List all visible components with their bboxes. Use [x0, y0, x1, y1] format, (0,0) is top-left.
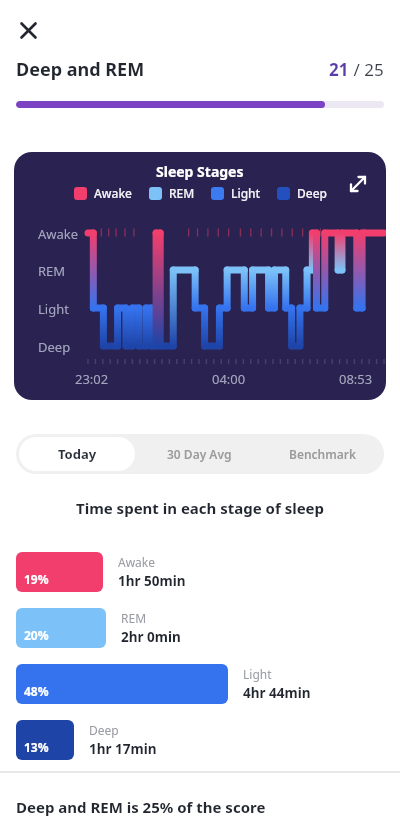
staticText: Deep and REM — [16, 57, 145, 82]
staticText: 1hr 17min — [89, 740, 157, 758]
staticText: 19% — [24, 571, 49, 587]
staticText: Awake — [118, 554, 156, 570]
staticText: REM — [121, 610, 147, 626]
staticText: Deep — [38, 338, 71, 356]
staticText: Awake — [38, 225, 79, 243]
staticText: 23:02 — [75, 370, 109, 388]
staticText: 13% — [24, 739, 49, 755]
staticText: Sleep Stages — [156, 162, 244, 181]
staticText: 4hr 44min — [243, 684, 311, 702]
staticText: 48% — [24, 683, 49, 699]
staticText: Benchmark — [289, 446, 357, 462]
staticText: Deep — [89, 722, 119, 738]
staticText: Deep — [297, 185, 327, 201]
staticText: Light — [231, 185, 261, 201]
staticText: Light — [38, 300, 69, 318]
staticText: Time spent in each stage of sleep — [76, 498, 325, 518]
staticText: / 25 — [349, 58, 384, 81]
staticText: 1hr 50min — [118, 572, 186, 590]
button[interactable]: Benchmark — [261, 434, 384, 474]
button[interactable]: 30 Day Avg — [138, 434, 261, 474]
staticText: REM — [169, 185, 195, 201]
staticText: 21 — [329, 58, 349, 81]
staticText: 20% — [24, 627, 49, 643]
staticText: Awake — [94, 185, 133, 201]
button[interactable] — [348, 174, 368, 194]
button[interactable] — [20, 22, 37, 39]
staticText: 04:00 — [212, 370, 246, 388]
staticText: REM — [38, 262, 66, 280]
staticText: 30 Day Avg — [167, 446, 232, 462]
button[interactable]: Today — [19, 437, 135, 471]
staticText: 08:53 — [339, 370, 373, 388]
staticText: Today — [58, 445, 97, 463]
staticText: 2hr 0min — [121, 628, 181, 646]
staticText: Deep and REM is 25% of the score — [16, 797, 266, 817]
staticText: Light — [243, 666, 272, 682]
